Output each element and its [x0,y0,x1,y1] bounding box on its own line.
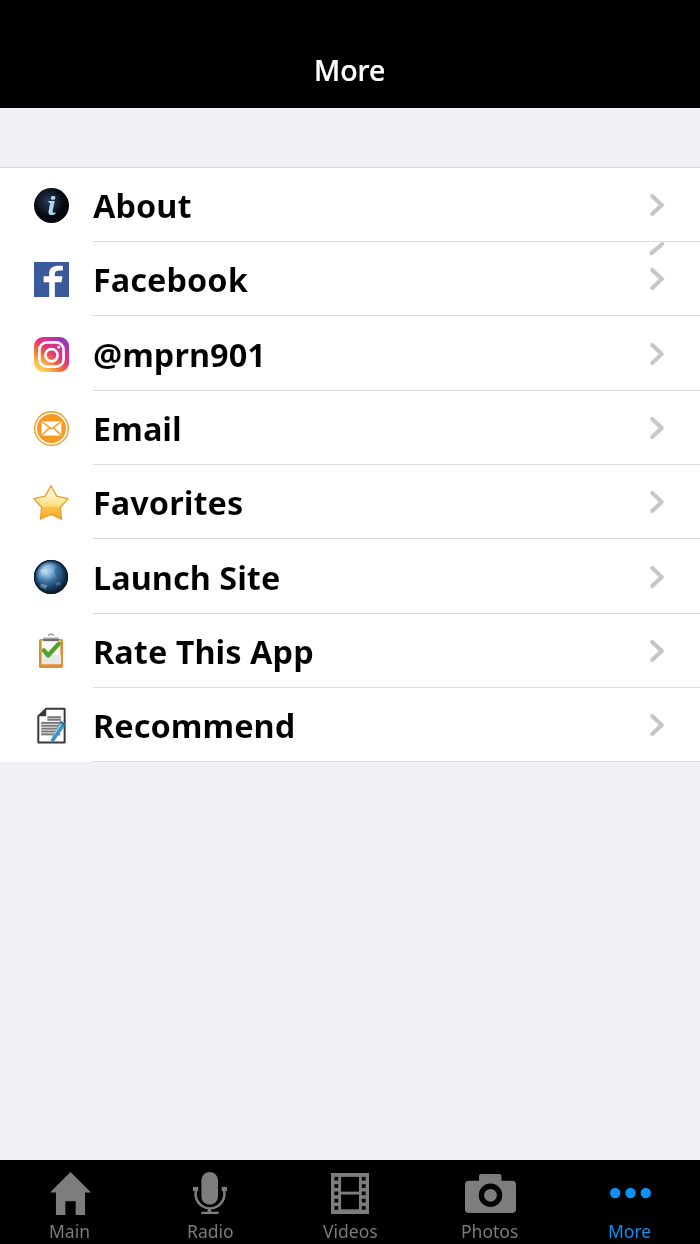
button[interactable]: Favorites [0,465,700,539]
button[interactable]: @mprn901 [0,316,700,391]
staticText: About [93,183,192,227]
staticText: Videos [323,1219,378,1243]
staticText: i [47,188,56,222]
button[interactable]: Main [0,1160,140,1244]
button[interactable]: Photos [420,1160,560,1244]
staticText: Rate This App [93,629,314,673]
staticText: Email [93,406,182,450]
other: Videos [331,1173,369,1214]
staticText: @mprn901 [93,332,266,376]
staticText: More [314,51,386,90]
other: More [610,1187,651,1199]
staticText: More [608,1219,652,1243]
other: Main [50,1172,91,1215]
button[interactable]: Radio [140,1160,280,1244]
button[interactable]: i [0,168,700,242]
staticText: Main [49,1219,91,1243]
button[interactable]: Rate This App [0,614,700,688]
staticText: Facebook [93,257,248,301]
button[interactable]: Recommend [0,688,700,762]
button[interactable]: Email [0,391,700,465]
other: Photos [465,1174,516,1213]
staticText: Recommend [93,703,296,747]
button[interactable]: Facebook [0,242,700,316]
button[interactable]: More [560,1160,700,1244]
staticText: Favorites [93,480,244,524]
button[interactable]: Launch Site [0,539,700,614]
staticText: Photos [461,1219,519,1243]
other: Radio [193,1172,227,1214]
staticText: Launch Site [93,555,281,599]
staticText: Radio [187,1219,234,1243]
button[interactable]: Videos [280,1160,420,1244]
